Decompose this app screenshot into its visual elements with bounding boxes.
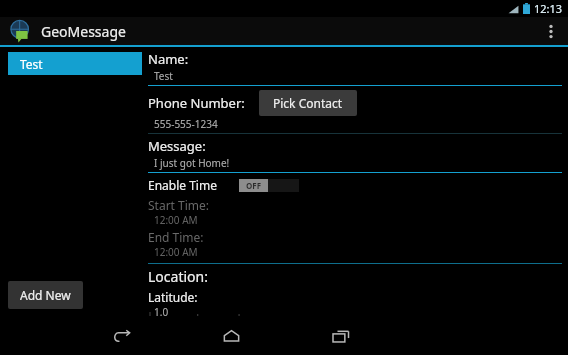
staticText: Name: (148, 50, 189, 68)
staticText: Phone Number: (148, 94, 245, 112)
button[interactable]: Pick Contact (259, 90, 357, 116)
staticText: GeoMessage (41, 22, 126, 41)
button[interactable]: Test (8, 52, 142, 75)
button[interactable]: Home (208, 317, 254, 355)
button[interactable]: OFF (239, 179, 299, 192)
staticText: OFF (246, 180, 262, 191)
staticText: 1.0 (154, 305, 169, 317)
staticText: Test (20, 56, 43, 72)
staticText: Add New (20, 287, 71, 303)
button[interactable]: Back (98, 317, 144, 355)
staticText: Latitude: (148, 289, 198, 305)
staticText: Location: (148, 267, 208, 286)
staticText: End Time: (148, 229, 204, 245)
staticText: 12:00 AM (154, 213, 198, 227)
staticText: Test (154, 69, 173, 83)
button[interactable]: Add New (8, 281, 83, 309)
staticText: 555-555-1234 (154, 117, 218, 131)
staticText: Enable Time (148, 177, 217, 193)
staticText: I just got Home! (154, 156, 230, 170)
staticText: Message: (148, 137, 206, 155)
staticText: Pick Contact (273, 95, 343, 111)
staticText: 12:00 AM (154, 245, 198, 259)
staticText: Start Time: (148, 197, 210, 213)
button[interactable]: Recent apps (318, 317, 364, 355)
button[interactable]: More options (537, 17, 565, 45)
staticText: 12:13 (534, 1, 563, 16)
